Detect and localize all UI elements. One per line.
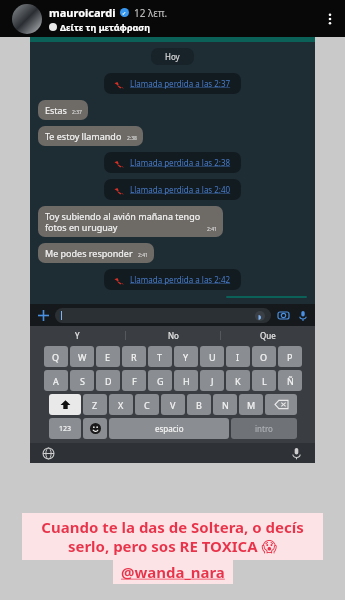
button[interactable]: K [226,370,250,391]
staticText: Llamada perdida a las 2:40 [130,184,231,195]
staticText: 2:41 [207,226,217,233]
staticText: I [236,351,240,363]
staticText: X [118,399,124,411]
staticText: 2:41 [138,252,148,259]
staticText: Me podes responder [45,247,133,259]
button[interactable]: A [44,370,68,391]
staticText: C [144,399,150,411]
button[interactable]: E [96,346,120,367]
button[interactable]: No [126,326,220,344]
staticText: ✓ [122,10,127,16]
button[interactable]: Y [30,326,125,344]
staticText: J [211,375,214,387]
staticText: 123 [59,424,72,434]
staticText: Hoy [165,51,180,62]
staticText: Toy subiendo al avión mañana tengo fotos… [45,210,202,233]
staticText: D [105,375,112,387]
staticText: V [170,399,176,411]
button[interactable]: R [122,346,146,367]
staticText: E [105,351,111,363]
staticText: 12 λεπ. [134,6,168,20]
button[interactable]: Llamada perdida a las 2:38 [104,152,241,173]
button[interactable]: N [213,394,237,415]
staticText: Que [260,330,276,341]
staticText: P [287,351,293,363]
staticText: B [196,399,202,411]
button[interactable]: Z [83,394,107,415]
staticText: Te estoy llamando [45,130,122,142]
staticText: O [260,351,268,363]
button[interactable]: O [252,346,276,367]
button[interactable]: I [226,346,250,367]
staticText: N [222,399,229,411]
button[interactable]: Que [221,326,315,344]
button[interactable]: intro [231,418,297,439]
staticText: G [157,375,164,387]
button[interactable]: U [200,346,224,367]
button[interactable]: P [278,346,302,367]
button[interactable]: H [174,370,198,391]
staticText: No [168,330,179,341]
staticText: Ñ [287,375,294,387]
staticText: Z [92,399,98,411]
staticText: R [131,351,137,363]
button[interactable]: Y [174,346,198,367]
button[interactable]: Estas [38,100,88,120]
staticText: Llamada perdida a las 2:37 [130,78,231,89]
button[interactable]: M [239,394,263,415]
staticText: Y [75,330,80,341]
button[interactable] [12,4,42,34]
staticText: ◗ [258,313,262,320]
staticText: M [247,399,256,411]
staticText: K [235,375,241,387]
button[interactable]: Backspace [265,394,297,415]
button[interactable]: Voice message [296,309,309,322]
staticText: W [78,351,87,363]
staticText: F [132,375,137,387]
staticText: 2:37 [72,109,82,116]
staticText: @wanda_nara [121,562,225,582]
staticText: Cuando te la das de Soltera, o decís ser… [28,517,317,556]
staticText: intro [255,423,273,434]
button[interactable]: Q [44,346,68,367]
button[interactable]: Me podes responder [38,243,154,263]
button[interactable]: 123 [49,418,81,439]
staticText: 2:38 [127,135,137,142]
button[interactable]: C [135,394,159,415]
button[interactable]: Llamada perdida a las 2:40 [104,179,241,200]
button[interactable]: More options [321,10,339,28]
button[interactable]: Change language [42,447,55,460]
button[interactable]: B [187,394,211,415]
button[interactable]: D [96,370,120,391]
button[interactable]: Llamada perdida a las 2:37 [104,73,241,94]
button[interactable]: V [161,394,185,415]
button[interactable]: W [70,346,94,367]
button[interactable]: Shift [49,394,81,415]
button[interactable]: Voice input [290,447,303,460]
button[interactable]: Te estoy llamando [38,126,143,146]
button[interactable]: G [148,370,172,391]
staticText: S [80,375,85,387]
staticText: mauroicardi [49,5,116,20]
staticText: espacio [155,423,184,434]
button[interactable]: Emoji [83,418,107,439]
staticText: H [183,375,190,387]
button[interactable]: espacio [109,418,229,439]
button[interactable]: T [148,346,172,367]
button[interactable]: @wanda_nara [121,562,225,582]
button[interactable]: J [200,370,224,391]
button[interactable]: F [122,370,146,391]
staticText: Δείτε τη μετάφραση [60,21,150,33]
button[interactable]: Ñ [278,370,302,391]
button[interactable]: Llamada perdida a las 2:42 [104,269,241,290]
button[interactable]: ◗ [55,308,271,323]
button[interactable]: Toy subiendo al avión mañana tengo fotos… [38,206,223,237]
button[interactable]: L [252,370,276,391]
staticText: T [157,351,163,363]
button[interactable]: X [109,394,133,415]
staticText: Estas [45,104,67,116]
button[interactable]: S [70,370,94,391]
button[interactable]: Attach [36,308,50,322]
button[interactable]: Camera [277,309,290,322]
